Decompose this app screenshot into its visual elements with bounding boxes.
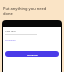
staticText: Continue: [27, 53, 38, 56]
staticText: Schedule: [5, 38, 16, 41]
staticText: New task: [5, 29, 16, 32]
button[interactable]: Continue: [5, 51, 59, 57]
staticText: Put anything you need done: [3, 6, 56, 16]
